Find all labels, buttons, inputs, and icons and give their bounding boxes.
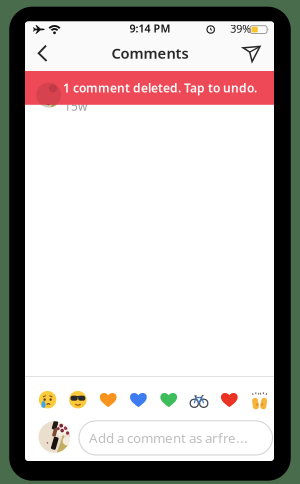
button[interactable]: Red heart emoji bbox=[221, 392, 238, 408]
button[interactable]: Green heart emoji bbox=[160, 392, 177, 408]
staticText: Comments bbox=[111, 43, 188, 63]
staticText: 39% bbox=[230, 21, 251, 36]
staticText: Add a comment as arfre... bbox=[89, 429, 248, 447]
staticText: 15w bbox=[64, 98, 87, 114]
button[interactable]: Blue heart emoji bbox=[130, 392, 147, 408]
button[interactable]: Bicycle emoji bbox=[189, 391, 208, 408]
button[interactable]: 1 comment deleted. Tap to undo. bbox=[25, 71, 274, 105]
staticText: 1 comment deleted. Tap to undo. bbox=[63, 80, 257, 96]
button[interactable]: Raising hands emoji bbox=[251, 391, 269, 409]
button[interactable]: Add a comment as arfre... bbox=[79, 421, 272, 455]
button[interactable]: Share bbox=[239, 41, 265, 67]
button[interactable]: Back bbox=[30, 40, 56, 66]
button[interactable]: Orange heart emoji bbox=[99, 392, 117, 408]
button[interactable]: Crying face emoji bbox=[39, 391, 57, 409]
button[interactable]: Sunglasses face emoji bbox=[69, 391, 87, 409]
staticText: 9:14 PM bbox=[129, 21, 170, 35]
